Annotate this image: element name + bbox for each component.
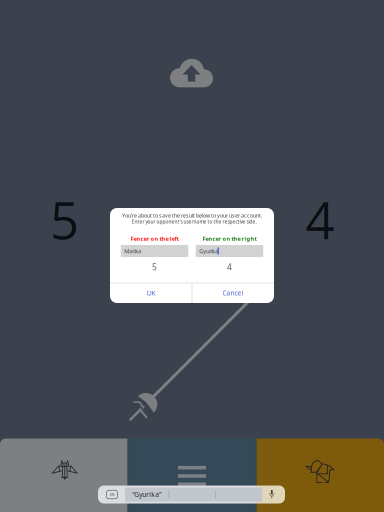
button[interactable]: Prediction	[169, 487, 215, 501]
button[interactable]: Save result	[170, 58, 213, 88]
staticText: 4	[305, 185, 334, 254]
button[interactable]: Cancel	[192, 283, 273, 303]
staticText: You're about to save the result below to…	[122, 212, 262, 219]
button[interactable]: “Gyurika”	[125, 487, 168, 501]
button[interactable]: Left fencer	[0, 438, 127, 512]
staticText: Gyurika	[199, 247, 218, 255]
staticText: 5	[50, 185, 79, 254]
button[interactable]: Dictate	[268, 490, 275, 499]
button[interactable]: Right fencer	[257, 438, 384, 512]
staticText: 4	[227, 261, 232, 273]
staticText: “Gyurika”	[132, 490, 161, 499]
button[interactable]: Switch keyboard	[106, 490, 117, 499]
staticText: 5	[152, 261, 157, 273]
button[interactable]: OK	[110, 283, 191, 303]
staticText: Enter your opponent's username to the re…	[131, 218, 256, 225]
staticText: Marika	[124, 247, 141, 255]
button[interactable]: Menu	[128, 438, 256, 512]
staticText: EN	[109, 492, 114, 497]
staticText: Fencer on the left	[130, 235, 178, 242]
staticText: OK	[146, 288, 155, 298]
staticText: Fencer on the right	[202, 235, 256, 242]
staticText: Cancel	[222, 288, 243, 298]
